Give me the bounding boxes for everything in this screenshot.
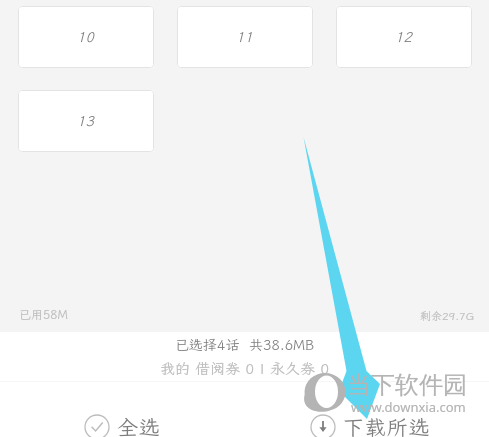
other: Select all	[84, 414, 110, 437]
other: Download selected	[310, 414, 336, 437]
staticText: www.downxia.com	[351, 398, 466, 416]
staticText: 已用58M	[19, 307, 68, 323]
staticText: 下载所选	[343, 413, 431, 437]
button[interactable]: 11	[177, 6, 313, 68]
staticText: 当下软件园	[347, 370, 467, 400]
button[interactable]: 13	[18, 90, 154, 152]
staticText: 13	[77, 112, 94, 130]
button[interactable]: Download selected	[248, 403, 489, 437]
staticText: 已选择4话 共38.6MB	[0, 336, 489, 354]
button[interactable]: 12	[336, 6, 472, 68]
staticText: 我的 借阅券 0 | 永久券 0	[0, 359, 489, 379]
staticText: 11	[236, 28, 253, 46]
staticText: 剩余29.7G	[420, 309, 474, 323]
staticText: 全选	[117, 413, 161, 437]
button[interactable]: Select all	[0, 403, 244, 437]
staticText: 10	[77, 28, 94, 46]
staticText: 12	[395, 28, 412, 46]
button[interactable]: 10	[18, 6, 154, 68]
